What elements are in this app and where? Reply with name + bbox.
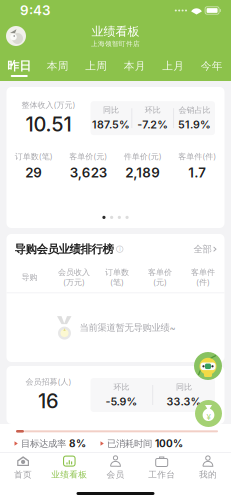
staticText: 客单件(件) [178,151,216,161]
staticText: (件) [196,277,210,287]
staticText: 全部 [193,243,211,255]
staticText: 业绩看板 [51,469,87,480]
staticText: (笔) [110,277,124,287]
staticText: 9:43 [20,2,50,18]
staticText: 目标达成率 [18,438,69,450]
staticText: 本周 [47,59,69,73]
staticText: -7.2% [137,118,168,131]
button[interactable]: 本周 [38,59,77,76]
staticText: 客单价 [148,267,172,277]
button[interactable]: Assistant [194,352,222,380]
staticText: 同比 [176,382,192,392]
staticText: 1.7 [188,164,206,181]
staticText: 会员 [106,469,124,480]
button[interactable]: Revenue [195,400,222,427]
staticText: -5.9% [105,395,137,408]
staticText: 2,189 [125,164,160,181]
button[interactable]: 昨日 [0,58,38,77]
staticText: 环比 [145,105,161,115]
staticText: 业绩看板 [91,24,139,39]
staticText: 同比 [103,105,119,115]
staticText: 订单数(笔) [15,151,53,161]
staticText: 导购会员业绩排行榜 [14,242,113,256]
staticText: 本月 [124,59,146,73]
staticText: 整体收入(万元) [21,100,75,110]
button[interactable]: 上月 [154,59,192,76]
staticText: 环比 [113,382,129,392]
staticText: 100% [155,438,183,450]
button[interactable]: 本月 [115,59,154,76]
staticText: 会员收入 [58,267,90,277]
staticText: 上周 [85,59,107,73]
button[interactable]: 首页 [0,456,46,480]
staticText: 首页 [14,469,32,480]
staticText: 工作台 [148,469,175,480]
staticText: 客单价(元) [69,151,107,161]
staticText: 会销占比 [178,105,210,115]
button[interactable]: 业绩看板 [46,456,92,480]
staticText: 16 [38,389,59,413]
staticText: (元) [153,277,167,287]
staticText: 33.3% [167,395,202,408]
staticText: 当前渠道暂无导购业绩~ [79,322,175,333]
staticText: 导购 [21,272,37,282]
staticText: 会员招募(人) [25,377,71,387]
button[interactable]: Profile [6,26,26,46]
staticText: 187.5% [92,118,130,131]
button[interactable]: 会员 [92,456,139,480]
staticText: 上月 [162,59,184,73]
button[interactable]: 上周 [77,59,115,76]
button[interactable]: 工作台 [139,456,185,480]
button[interactable]: 我的 [185,456,231,480]
staticText: (万元) [63,277,85,287]
button[interactable]: 全部 [193,243,216,255]
staticText: 8% [69,438,86,450]
staticText: ¥ [206,412,210,422]
staticText: 29 [25,164,42,181]
staticText: 51.9% [178,118,211,131]
staticText: 昨日 [7,58,31,73]
staticText: 件单价(元) [124,151,162,161]
staticText: 10.51 [25,112,71,136]
staticText: 3,623 [70,164,107,181]
staticText: 上海领智盯件店 [91,40,140,48]
button[interactable]: 今年 [192,59,231,76]
staticText: 订单数 [105,267,129,277]
staticText: 客单件 [191,267,215,277]
staticText: i [119,245,120,253]
staticText: 我的 [199,469,217,480]
staticText: 今年 [201,59,223,73]
staticText: 已消耗时间 [104,438,155,450]
